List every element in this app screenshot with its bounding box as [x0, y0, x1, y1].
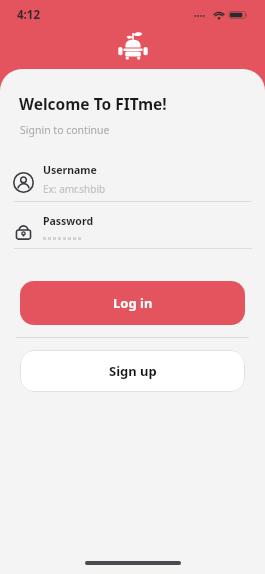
staticText: Signin to continue [20, 123, 110, 137]
button[interactable]: Sign up [20, 350, 245, 392]
staticText: Log in [113, 294, 153, 312]
staticText: Password [43, 214, 94, 228]
staticText: 4:12 [17, 7, 40, 23]
staticText: Sign up [109, 362, 157, 380]
button[interactable]: Log in [20, 281, 245, 325]
button[interactable]: Password [12, 214, 252, 248]
staticText: Ex: amr.shbib [43, 182, 106, 196]
staticText: Welcome To FITme! [19, 93, 167, 114]
staticText: Username [43, 163, 97, 177]
other: FITme logo [118, 31, 148, 60]
button[interactable]: Username [12, 163, 252, 201]
